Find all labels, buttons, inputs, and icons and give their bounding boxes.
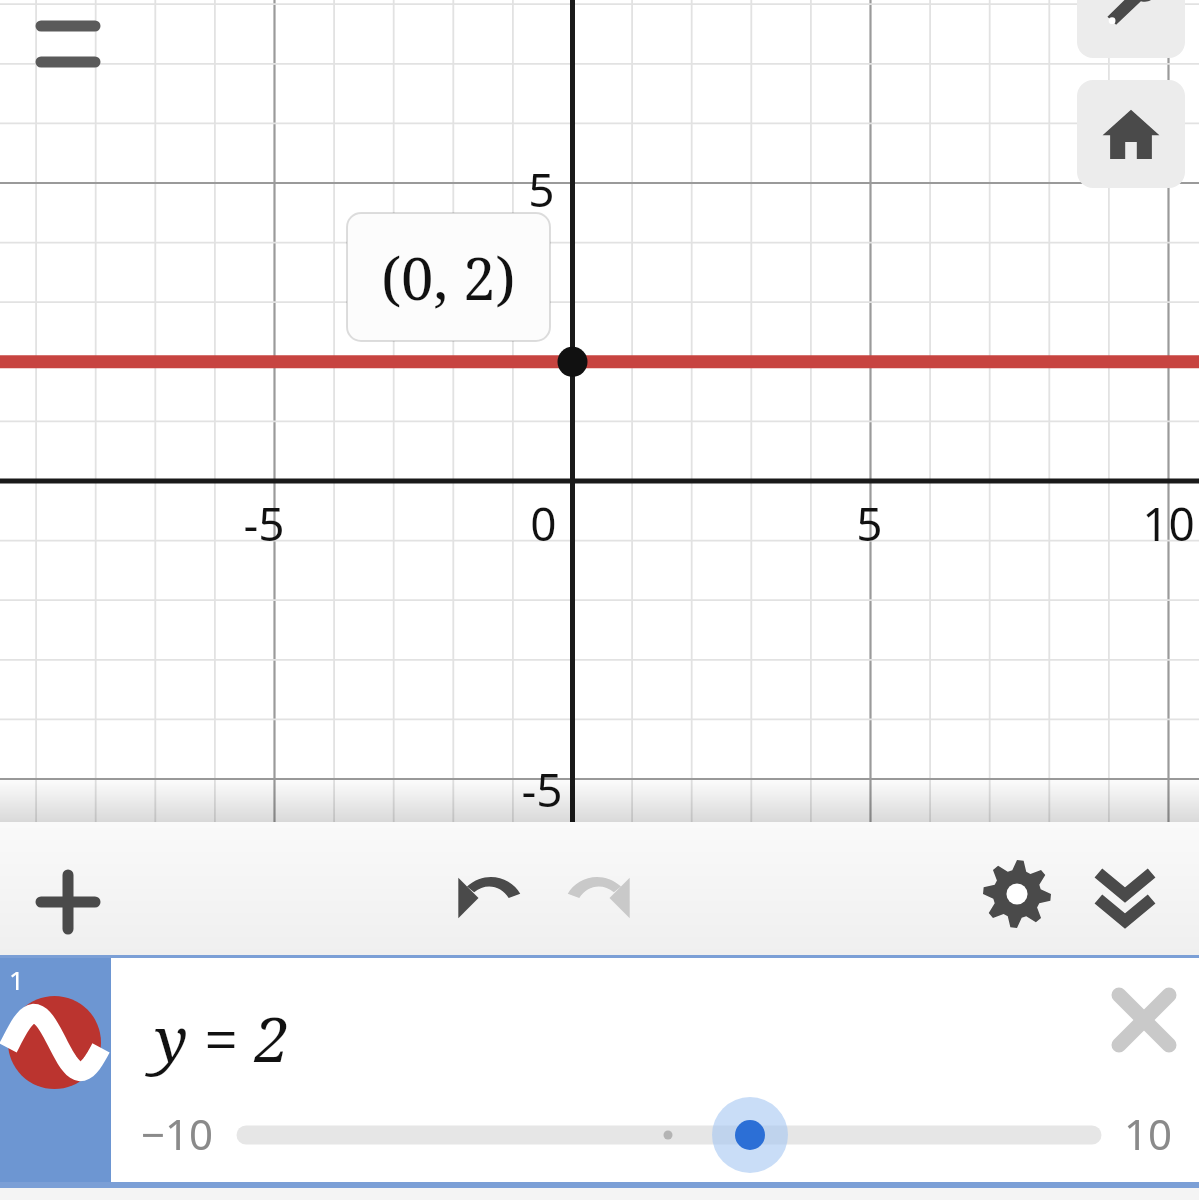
button[interactable]: Expression color and visibility — [0, 958, 111, 1185]
button[interactable]: Tools — [1077, 0, 1185, 58]
staticText: -5 — [243, 492, 285, 555]
staticText: 10 — [1142, 492, 1195, 555]
button[interactable]: Add expression — [22, 856, 114, 948]
button[interactable]: Home — [1077, 80, 1185, 188]
button[interactable]: Settings — [971, 848, 1063, 940]
staticText: −10 — [141, 1105, 214, 1162]
staticText: 5 — [856, 492, 883, 555]
staticText: y = 2 — [155, 996, 290, 1080]
staticText: -5 — [521, 758, 563, 821]
staticText: (0, 2) — [381, 238, 516, 317]
button[interactable]: Menu — [24, 0, 112, 70]
button[interactable]: Delete expression — [1098, 974, 1190, 1066]
button[interactable] — [230, 1095, 1110, 1175]
staticText: 5 — [528, 158, 555, 221]
staticText: 0 — [530, 492, 557, 555]
staticText: 1 — [9, 962, 24, 997]
button[interactable]: (0, 2) — [347, 213, 550, 341]
button[interactable]: Collapse keypad — [1079, 848, 1171, 940]
button[interactable]: Redo — [552, 852, 644, 944]
button[interactable]: Undo — [444, 852, 536, 944]
button[interactable]: Expression color and visibility — [0, 958, 1199, 1185]
staticText: 10 — [1124, 1105, 1173, 1162]
